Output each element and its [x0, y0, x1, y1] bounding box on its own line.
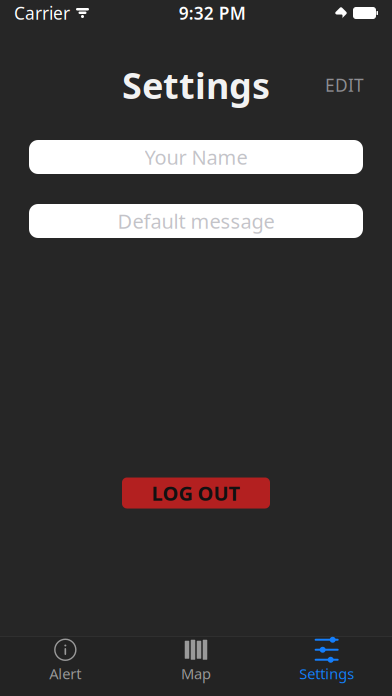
staticText: Default message: [117, 208, 274, 234]
button[interactable]: EDIT: [315, 65, 374, 104]
staticText: Carrier: [14, 1, 70, 24]
button[interactable]: Settings: [261, 637, 392, 685]
button[interactable]: Default message: [29, 204, 363, 238]
staticText: 9:32 PM: [179, 1, 246, 24]
button[interactable]: Your Name: [29, 140, 363, 174]
button[interactable]: Alert: [0, 637, 131, 685]
staticText: EDIT: [325, 73, 364, 96]
staticText: LOG OUT: [151, 480, 240, 506]
staticText: Settings: [122, 61, 270, 109]
staticText: Settings: [299, 664, 354, 683]
staticText: Your Name: [144, 144, 247, 170]
staticText: Map: [181, 664, 211, 683]
staticText: Alert: [49, 664, 81, 683]
button[interactable]: Map: [131, 637, 261, 685]
button[interactable]: LOG OUT: [122, 477, 270, 508]
